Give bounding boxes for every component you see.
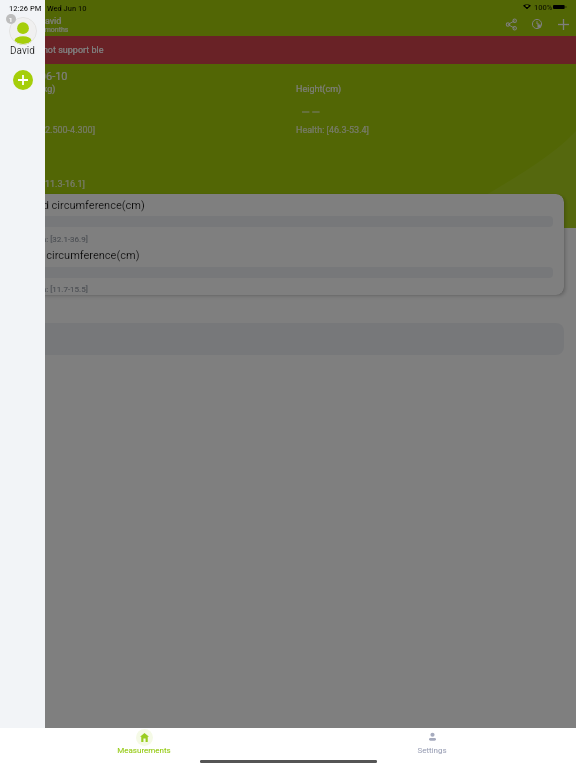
- staticText: Weight(kg): [12, 84, 56, 95]
- staticText: Device not support ble: [14, 45, 104, 56]
- staticText: Health: [11.7-15.5]: [23, 285, 88, 294]
- button[interactable]: [23, 267, 553, 278]
- button[interactable]: Measurements: [0, 728, 288, 756]
- staticText: 1: [9, 16, 13, 23]
- staticText: 12:26 PM: [9, 4, 42, 13]
- staticText: Wed Jun 10: [47, 4, 87, 13]
- staticText: Health: [46.3-53.4]: [296, 125, 369, 136]
- staticText: Health: [32.1-36.9]: [23, 235, 88, 244]
- staticText: 7 months: [39, 26, 69, 34]
- button[interactable]: [23, 216, 553, 227]
- staticText: Arm circumference(cm): [23, 249, 140, 262]
- staticText: Settings: [417, 746, 447, 755]
- staticText: David: [10, 45, 35, 57]
- staticText: 100%: [534, 3, 553, 12]
- staticText: Health: [11.3-16.1]: [12, 179, 85, 190]
- button[interactable]: [12, 323, 564, 355]
- button[interactable]: David, selected child: [9, 17, 37, 45]
- staticText: Head circumference(cm): [23, 199, 145, 212]
- button[interactable]: History: [524, 11, 550, 37]
- button[interactable]: Add measurement: [550, 11, 576, 37]
- button[interactable]: Add child: [13, 70, 33, 90]
- staticText: 2020-06-10: [12, 70, 68, 83]
- staticText: Height(cm): [296, 84, 342, 95]
- staticText: Health: [2.500-4.300]: [12, 125, 96, 136]
- staticText: Measurements: [117, 746, 171, 755]
- staticText: David: [39, 16, 62, 27]
- button[interactable]: Share: [498, 11, 524, 37]
- button[interactable]: Settings: [288, 728, 576, 756]
